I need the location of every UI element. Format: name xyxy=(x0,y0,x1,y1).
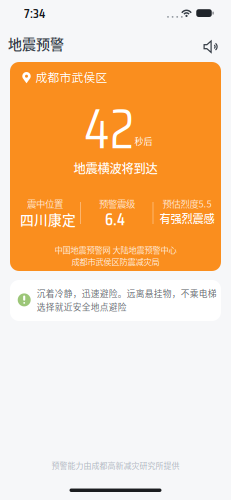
staticText: 7:34 xyxy=(24,3,45,24)
staticText: 地震横波将到达 xyxy=(73,159,157,177)
staticText: 中国地震预警网 大陆地震预警中心 xyxy=(54,244,176,256)
staticText: 有强烈震感 xyxy=(159,210,214,226)
staticText: 沉着冷静，迅速避险。远离悬挂物，不乘电梯 xyxy=(37,287,217,299)
staticText: 地震预警 xyxy=(8,33,64,54)
staticText: 成都市武侯区 xyxy=(36,68,108,85)
button[interactable]: 静音 xyxy=(197,33,223,59)
staticText: 预警能力由成都高新减灾研究所提供 xyxy=(51,459,179,471)
staticText: 选择就近安全地点避险 xyxy=(37,300,127,313)
staticText: 42 xyxy=(84,86,134,172)
staticText: 秒后 xyxy=(134,134,152,147)
staticText: 震中位置 xyxy=(27,197,63,210)
staticText: 6.4 xyxy=(105,206,125,233)
staticText: 四川康定 xyxy=(20,209,76,229)
staticText: 成都市武侯区防震减灾局 xyxy=(71,255,159,267)
staticText: 预估烈度5.5 xyxy=(162,197,211,210)
staticText: 预警震级 xyxy=(99,197,135,210)
